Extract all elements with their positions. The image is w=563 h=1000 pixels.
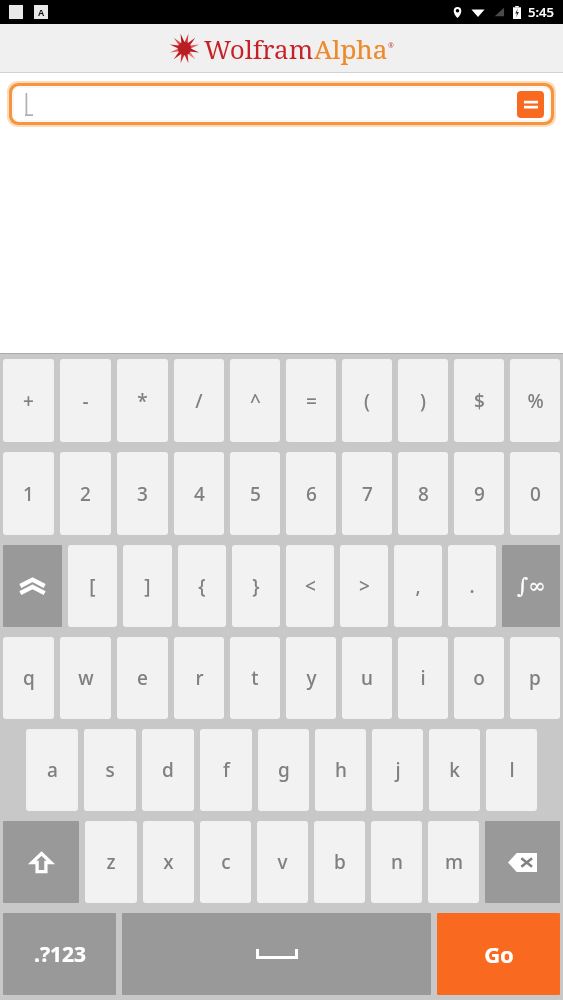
button[interactable]: Menu: [7, 81, 556, 127]
button[interactable]: n: [371, 821, 422, 903]
button[interactable]: .?123: [3, 913, 116, 995]
button[interactable]: b: [314, 821, 365, 903]
staticText: -: [82, 388, 89, 414]
staticText: A: [38, 6, 45, 18]
staticText: d: [162, 757, 174, 783]
button[interactable]: [: [68, 545, 117, 627]
staticText: h: [335, 757, 347, 783]
staticText: w: [78, 665, 94, 691]
button[interactable]: 5: [230, 452, 280, 535]
button[interactable]: .: [448, 545, 496, 627]
button[interactable]: ^: [230, 359, 280, 442]
button[interactable]: d: [142, 729, 194, 811]
button[interactable]: l: [486, 729, 537, 811]
button[interactable]: u: [342, 637, 392, 719]
button[interactable]: p: [510, 637, 560, 719]
button[interactable]: 0: [510, 452, 560, 535]
staticText: u: [361, 665, 373, 691]
button[interactable]: >: [340, 545, 388, 627]
button[interactable]: h: [315, 729, 366, 811]
button[interactable]: {: [178, 545, 226, 627]
button[interactable]: 2: [60, 452, 111, 535]
button[interactable]: f: [200, 729, 252, 811]
button[interactable]: 6: [286, 452, 336, 535]
button[interactable]: w: [60, 637, 111, 719]
button[interactable]: /: [174, 359, 224, 442]
staticText: x: [163, 849, 174, 875]
staticText: q: [23, 665, 35, 691]
staticText: e: [137, 665, 148, 691]
button[interactable]: 9: [454, 452, 504, 535]
button[interactable]: }: [232, 545, 280, 627]
button[interactable]: x: [143, 821, 194, 903]
button[interactable]: =: [286, 359, 336, 442]
button[interactable]: <: [286, 545, 334, 627]
button[interactable]: Space: [122, 913, 431, 995]
staticText: 5:45: [528, 3, 554, 21]
button[interactable]: More symbols: [3, 545, 62, 627]
staticText: 3: [137, 481, 148, 507]
staticText: {: [198, 573, 206, 599]
staticText: 4: [194, 481, 205, 507]
button[interactable]: *: [117, 359, 168, 442]
staticText: [: [89, 573, 96, 599]
staticText: ∫∞: [517, 574, 546, 598]
staticText: >: [359, 573, 370, 599]
button[interactable]: s: [84, 729, 136, 811]
staticText: <: [305, 573, 316, 599]
button[interactable]: Backspace: [485, 821, 560, 903]
staticText: a: [47, 757, 58, 783]
staticText: 1: [23, 481, 34, 507]
staticText: .?123: [34, 940, 86, 969]
button[interactable]: t: [230, 637, 280, 719]
button[interactable]: i: [398, 637, 448, 719]
button[interactable]: 3: [117, 452, 168, 535]
button[interactable]: ]: [123, 545, 172, 627]
staticText: l: [509, 757, 515, 783]
button[interactable]: y: [286, 637, 336, 719]
button[interactable]: a: [26, 729, 78, 811]
button[interactable]: v: [257, 821, 308, 903]
button[interactable]: Shift: [3, 821, 79, 903]
button[interactable]: Math symbols: [502, 545, 560, 627]
button[interactable]: k: [429, 729, 480, 811]
button[interactable]: Menu: [517, 91, 544, 118]
staticText: i: [420, 665, 426, 691]
button[interactable]: c: [200, 821, 251, 903]
staticText: ]: [144, 573, 151, 599]
staticText: 9: [474, 481, 485, 507]
button[interactable]: m: [428, 821, 479, 903]
button[interactable]: q: [3, 637, 54, 719]
button[interactable]: %: [510, 359, 560, 442]
staticText: (: [364, 388, 370, 414]
button[interactable]: o: [454, 637, 504, 719]
button[interactable]: -: [60, 359, 111, 442]
button[interactable]: j: [372, 729, 423, 811]
staticText: Alpha: [314, 31, 388, 66]
button[interactable]: Go: [437, 913, 560, 995]
staticText: n: [391, 849, 403, 875]
button[interactable]: 1: [3, 452, 54, 535]
button[interactable]: ,: [394, 545, 442, 627]
staticText: t: [251, 665, 259, 691]
button[interactable]: 8: [398, 452, 448, 535]
button[interactable]: (: [342, 359, 392, 442]
button[interactable]: g: [258, 729, 309, 811]
button[interactable]: 4: [174, 452, 224, 535]
button[interactable]: $: [454, 359, 504, 442]
staticText: *: [137, 388, 148, 414]
staticText: 2: [80, 481, 91, 507]
staticText: .: [469, 573, 475, 599]
staticText: ,: [415, 573, 421, 599]
button[interactable]: 7: [342, 452, 392, 535]
staticText: 0: [530, 481, 541, 507]
button[interactable]: e: [117, 637, 168, 719]
staticText: o: [473, 665, 485, 691]
staticText: ^: [250, 388, 261, 414]
button[interactable]: z: [85, 821, 137, 903]
staticText: c: [221, 849, 231, 875]
button[interactable]: +: [3, 359, 54, 442]
staticText: z: [106, 849, 116, 875]
button[interactable]: r: [174, 637, 224, 719]
button[interactable]: ): [398, 359, 448, 442]
